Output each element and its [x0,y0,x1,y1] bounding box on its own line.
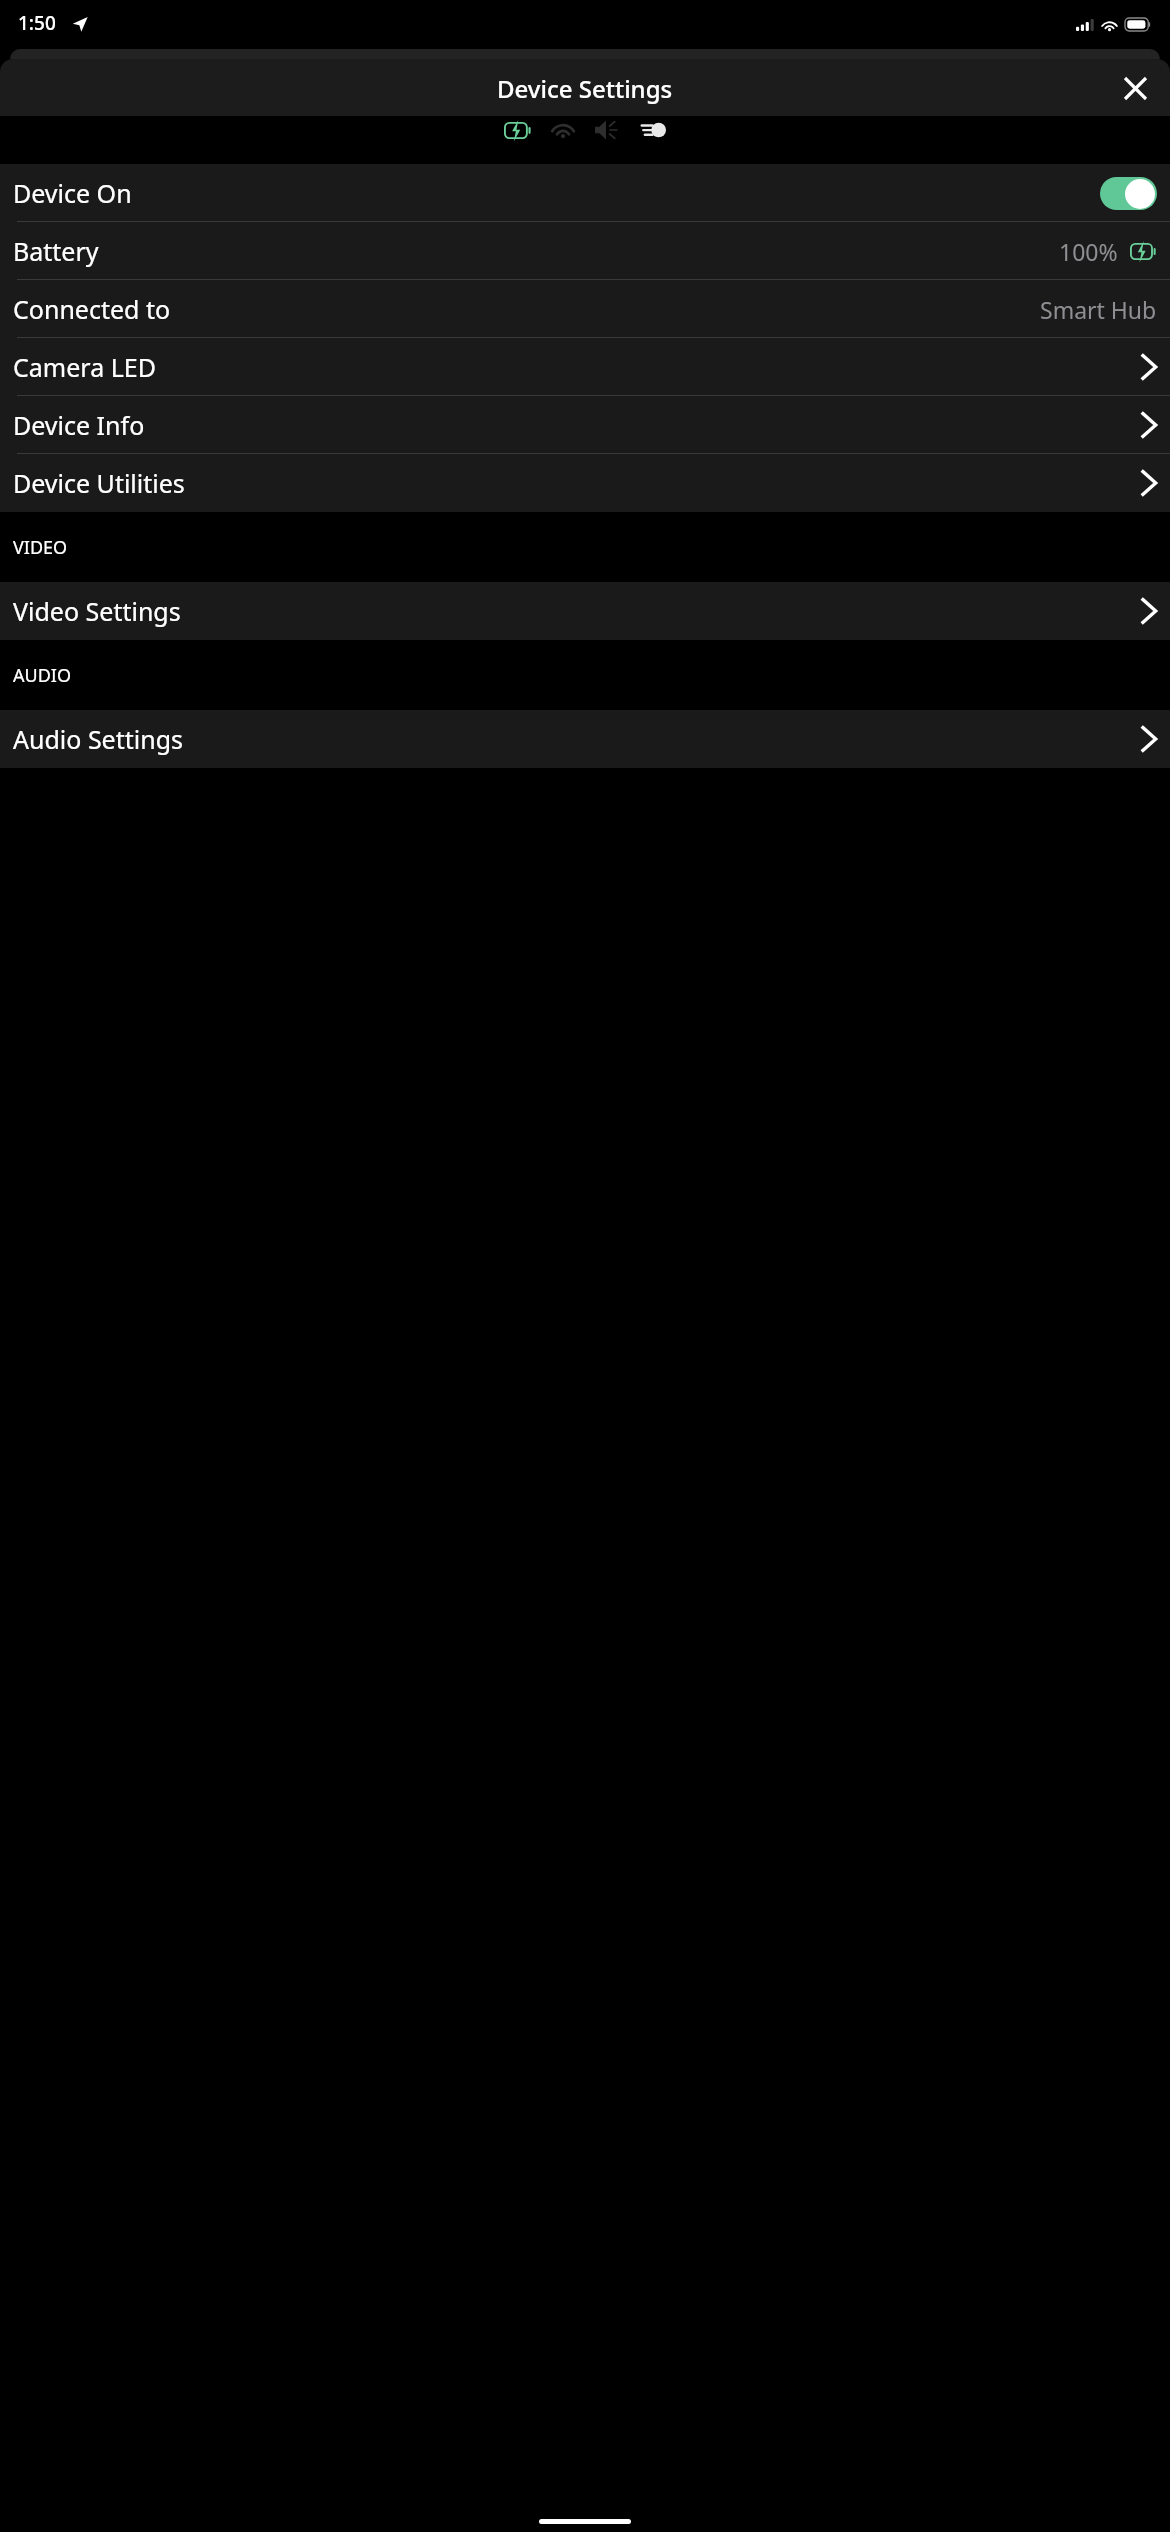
staticText: AUDIO [13,663,71,688]
button[interactable]: Video Settings [0,582,1170,640]
button[interactable]: Device On toggle [1100,177,1157,210]
staticText: Battery [13,234,99,268]
staticText: VIDEO [13,535,68,560]
staticText: 100% [1059,236,1118,267]
button[interactable]: Device Utilities [0,454,1170,512]
button[interactable]: Close [1112,65,1158,111]
button[interactable]: Connected to [0,280,1170,338]
staticText: Camera LED [13,350,156,384]
button[interactable]: Device Info [0,396,1170,454]
staticText: Connected to [13,292,171,326]
button[interactable]: Device On [0,164,1170,222]
staticText: Device Settings [497,72,673,105]
staticText: Device Info [13,408,145,442]
button[interactable]: Camera LED [0,338,1170,396]
staticText: Smart Hub [1040,294,1157,325]
staticText: Audio Settings [13,722,184,756]
staticText: Video Settings [13,594,181,628]
staticText: 1:50 [18,10,56,36]
button[interactable]: Audio Settings [0,710,1170,768]
staticText: Device Utilities [13,466,185,500]
staticText: Device On [13,176,132,210]
button[interactable]: Battery [0,222,1170,280]
